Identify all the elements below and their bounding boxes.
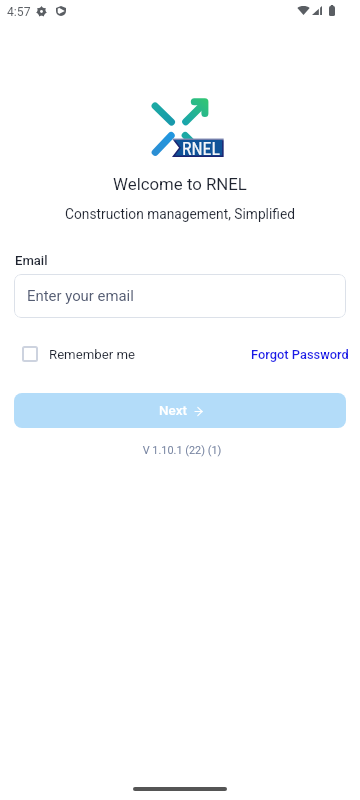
staticText: RNEL [182,138,220,159]
staticText: 4:57 [7,5,31,19]
staticText: Remember me [49,347,135,362]
staticText: Welcome to RNEL [0,174,360,194]
button[interactable]: Remember me [14,344,135,364]
staticText: Enter your email [27,287,134,304]
button[interactable]: Forgot Password [251,347,349,362]
button[interactable]: Next [14,393,346,428]
staticText: V 1.10.1 (22) (1) [2,444,360,457]
button[interactable]: Enter your email [14,274,346,318]
staticText: Construction management, Simplified [0,206,360,222]
staticText: Next [159,403,187,419]
staticText: Email [15,253,48,268]
